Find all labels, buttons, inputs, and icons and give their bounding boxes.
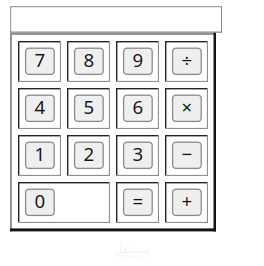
button[interactable]: ÷: [173, 48, 201, 74]
staticText: 4: [34, 94, 45, 119]
staticText: −: [181, 141, 192, 166]
staticText: =: [132, 188, 143, 213]
staticText: 3: [132, 141, 143, 166]
staticText: 5: [83, 94, 94, 119]
button[interactable]: −: [173, 142, 201, 168]
button[interactable]: 6: [124, 95, 152, 121]
button[interactable]: +: [173, 189, 201, 215]
staticText: 9: [132, 47, 143, 72]
button[interactable]: 5: [75, 95, 103, 121]
button[interactable]: 2: [75, 142, 103, 168]
staticText: +: [181, 188, 192, 213]
button[interactable]: ×: [173, 95, 201, 121]
staticText: 6: [132, 94, 143, 119]
staticText: mostaql.com: [115, 252, 147, 260]
staticText: 1: [34, 141, 45, 166]
button[interactable]: 1: [26, 142, 54, 168]
button[interactable]: 4: [26, 95, 54, 121]
button[interactable]: 8: [75, 48, 103, 74]
button[interactable]: 0: [26, 189, 54, 215]
button[interactable]: 7: [26, 48, 54, 74]
staticText: 2: [83, 141, 94, 166]
button[interactable]: 3: [124, 142, 152, 168]
staticText: ÷: [181, 47, 192, 72]
staticText: 0: [34, 188, 45, 213]
staticText: مستقل: [113, 242, 149, 256]
button[interactable]: 9: [124, 48, 152, 74]
button[interactable]: =: [124, 189, 152, 215]
staticText: 8: [83, 47, 94, 72]
staticText: ×: [181, 94, 192, 119]
staticText: 7: [34, 47, 45, 72]
